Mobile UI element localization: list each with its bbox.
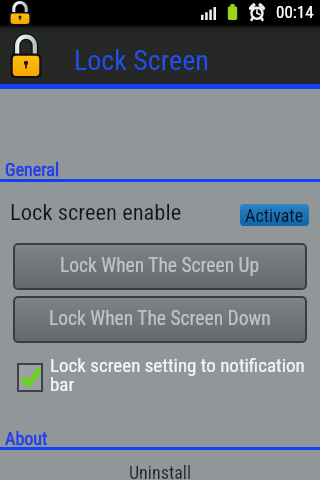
staticText: 00:14 bbox=[276, 2, 314, 22]
other: Battery bbox=[226, 4, 239, 20]
staticText: Uninstall bbox=[129, 462, 192, 480]
staticText: Lock screen setting to notification bar bbox=[50, 354, 320, 396]
other: Lock bbox=[9, 34, 43, 79]
staticText: Lock When The Screen Up bbox=[60, 254, 260, 277]
staticText: Activate bbox=[245, 205, 304, 226]
button[interactable]: Lock When The Screen Up bbox=[13, 243, 307, 290]
other: Lock bbox=[8, 1, 32, 26]
staticText: Lock screen enable bbox=[10, 199, 182, 225]
button[interactable]: Lock When The Screen Down bbox=[13, 296, 307, 343]
staticText: About bbox=[5, 428, 48, 449]
button[interactable]: Lock screen setting to notification bar bbox=[17, 354, 320, 396]
other: Signal strength bbox=[201, 7, 216, 20]
button[interactable]: Uninstall bbox=[0, 462, 320, 480]
button[interactable]: Activate bbox=[240, 204, 309, 226]
staticText: Lock When The Screen Down bbox=[49, 307, 271, 330]
staticText: General bbox=[5, 159, 60, 180]
other: Alarm bbox=[249, 4, 265, 20]
staticText: Lock Screen bbox=[74, 44, 209, 77]
